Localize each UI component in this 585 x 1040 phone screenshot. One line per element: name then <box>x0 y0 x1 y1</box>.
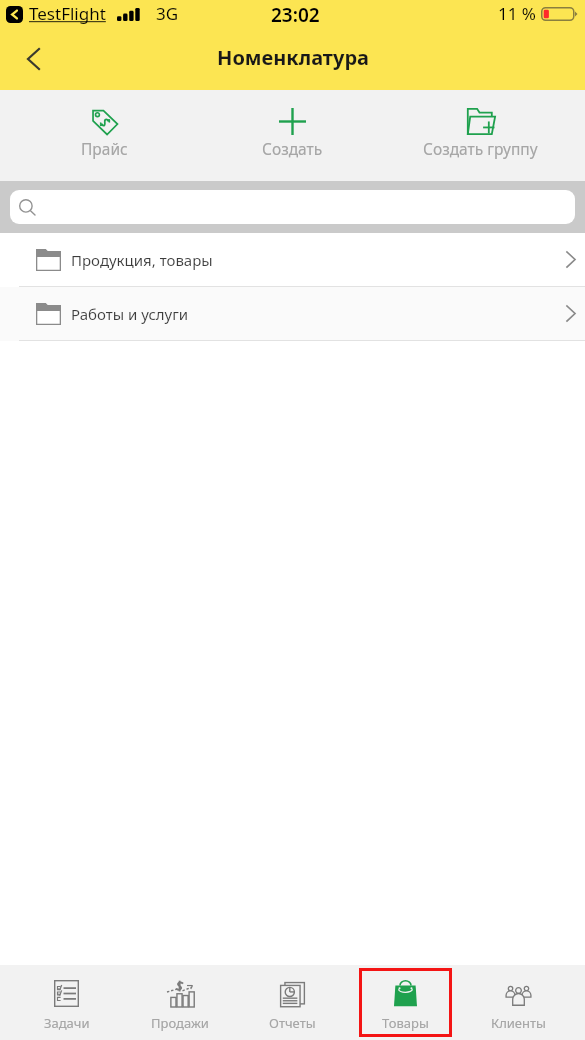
staticText: Создать <box>262 138 323 159</box>
button[interactable]: Создать группу <box>386 90 574 181</box>
staticText: Прайс <box>81 138 128 159</box>
button[interactable]: Прайс <box>11 90 198 181</box>
button[interactable]: Создать <box>198 90 386 181</box>
button[interactable]: Поиск <box>10 190 575 224</box>
staticText: 23:02 <box>271 2 320 28</box>
staticText: 3G <box>156 2 179 25</box>
staticText: Товары <box>382 1014 429 1032</box>
button[interactable]: Клиенты <box>472 968 565 1037</box>
button[interactable]: Задачи <box>20 968 113 1037</box>
button[interactable]: Продукция, товары <box>0 233 585 287</box>
staticText: Задачи <box>44 1014 90 1032</box>
staticText: Продукция, товары <box>71 250 213 270</box>
staticText: Номенклатура <box>217 44 369 71</box>
button[interactable]: Работы и услуги <box>0 287 585 341</box>
staticText: Клиенты <box>491 1014 546 1032</box>
staticText: 11 % <box>498 2 536 25</box>
staticText: Создать группу <box>423 138 538 159</box>
staticText: Отчеты <box>269 1014 316 1032</box>
staticText: Продажи <box>151 1014 209 1032</box>
button[interactable]: Продажи <box>133 968 226 1037</box>
button[interactable]: Отчеты <box>246 968 339 1037</box>
button[interactable]: Назад <box>7 33 59 85</box>
button[interactable]: Товары <box>359 968 452 1037</box>
staticText: TestFlight <box>29 2 106 25</box>
staticText: Работы и услуги <box>71 304 189 324</box>
